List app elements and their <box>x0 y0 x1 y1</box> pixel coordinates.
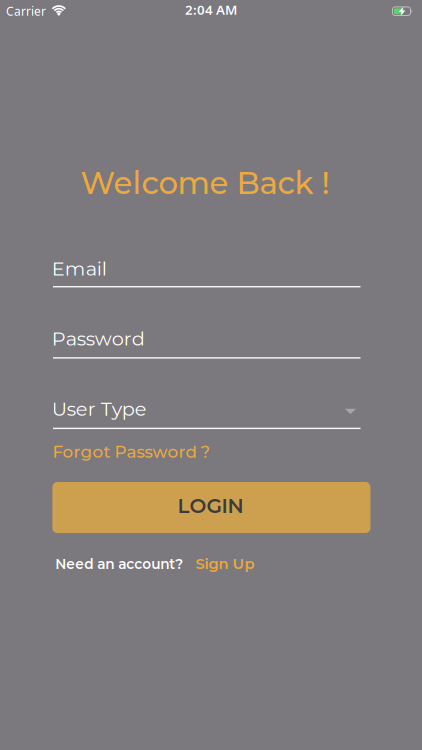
staticText: Need an account? <box>55 556 183 572</box>
button[interactable]: Sign Up <box>195 555 254 573</box>
button[interactable]: Password <box>53 327 360 361</box>
staticText: Sign Up <box>195 555 254 573</box>
staticText: Welcome Back ! <box>80 164 329 202</box>
staticText: Password <box>52 327 145 350</box>
button[interactable]: Forgot Password ? <box>52 442 210 462</box>
button[interactable]: LOGIN <box>52 482 370 533</box>
staticText: 2:04 AM <box>185 1 237 18</box>
staticText: LOGIN <box>177 494 243 518</box>
staticText: User Type <box>52 397 147 421</box>
staticText: Forgot Password ? <box>52 442 210 462</box>
button[interactable]: Email <box>53 257 360 291</box>
button[interactable]: User Type <box>53 397 360 431</box>
staticText: Email <box>52 257 107 280</box>
staticText: Carrier <box>6 3 46 19</box>
